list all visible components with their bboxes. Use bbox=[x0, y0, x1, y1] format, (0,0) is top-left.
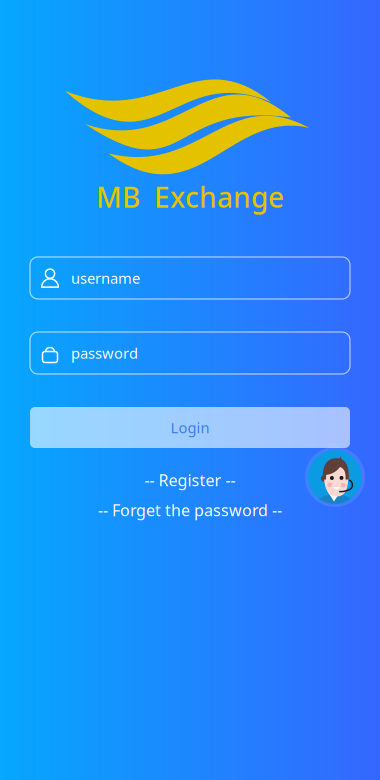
staticText: Login bbox=[170, 418, 209, 437]
staticText: username bbox=[71, 268, 140, 288]
staticText: password bbox=[71, 343, 138, 363]
staticText: MB Exchange bbox=[96, 178, 284, 216]
button[interactable]: -- Register -- bbox=[0, 468, 380, 492]
button[interactable]: Login bbox=[30, 407, 350, 448]
button[interactable]: -- Forget the password -- bbox=[0, 498, 380, 522]
staticText: -- Register -- bbox=[144, 469, 235, 491]
staticText: -- Forget the password -- bbox=[98, 499, 282, 521]
button[interactable]: Customer service bbox=[311, 453, 365, 507]
